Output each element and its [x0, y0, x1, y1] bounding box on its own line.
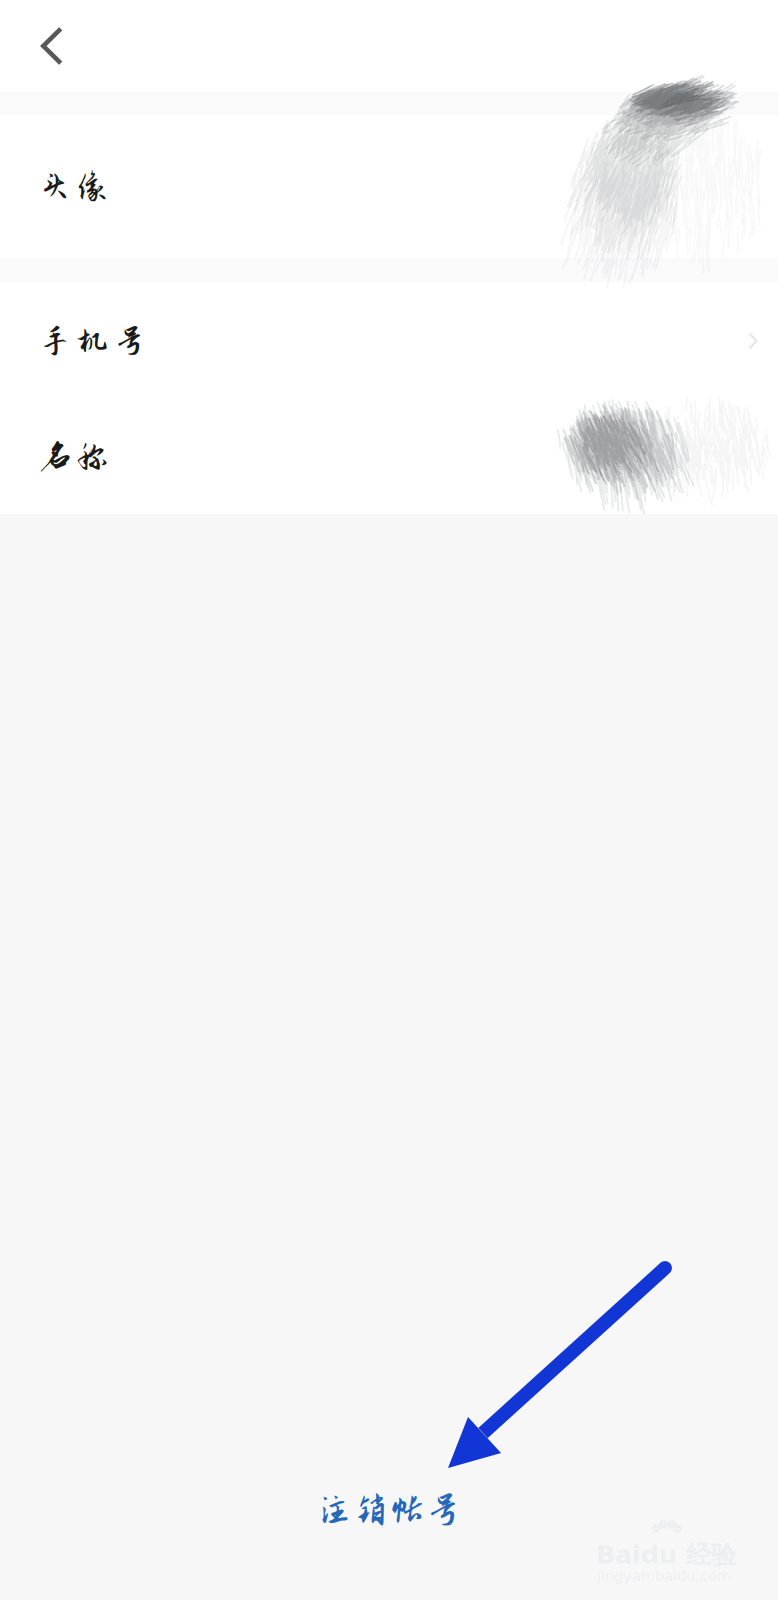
staticText: Baidu 经验: [596, 1539, 736, 1571]
staticText: 名称: [39, 439, 108, 475]
button[interactable]: 注销帐号: [0, 1471, 778, 1549]
button[interactable]: 手机号: [0, 282, 778, 400]
button[interactable]: Back: [0, 0, 87, 92]
button[interactable]: 头像: [0, 115, 778, 258]
button[interactable]: 名称: [0, 400, 778, 514]
staticText: jingyan.baidu.com: [597, 1567, 731, 1585]
staticText: 头像: [39, 168, 108, 204]
staticText: 注销帐号: [317, 1490, 461, 1530]
staticText: 手机号: [39, 323, 145, 359]
